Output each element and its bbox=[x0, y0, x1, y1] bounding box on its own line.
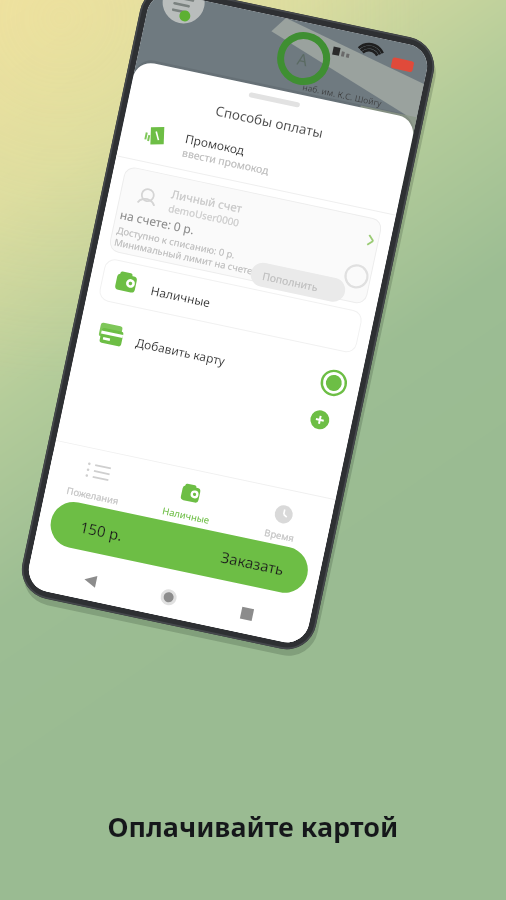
button[interactable]: Оплачивайте картой bbox=[0, 0, 506, 900]
other: Оплачивайте картой bbox=[0, 0, 506, 900]
